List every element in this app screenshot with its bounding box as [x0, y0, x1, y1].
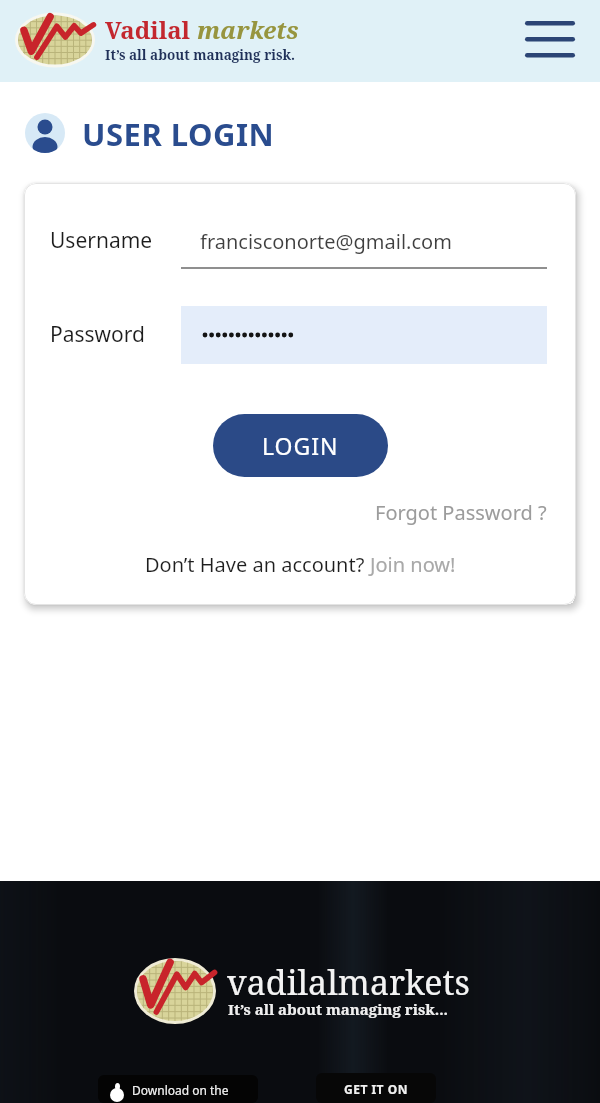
- staticText: markets: [197, 13, 299, 46]
- button[interactable]: Forgot Password ?: [375, 499, 547, 526]
- staticText: GET IT ON: [344, 1081, 408, 1097]
- button[interactable]: GET IT ON: [316, 1073, 436, 1103]
- staticText: Password: [50, 320, 145, 349]
- staticText: It’s all about managing risk...: [228, 999, 448, 1019]
- button[interactable]: LOGIN: [213, 414, 388, 477]
- staticText: francisconorte@gmail.com: [200, 228, 452, 255]
- button[interactable]: Join now!: [370, 551, 456, 578]
- staticText: LOGIN: [262, 430, 339, 461]
- button[interactable]: Download on the: [98, 1075, 258, 1103]
- staticText: Username: [50, 226, 153, 255]
- staticText: USER LOGIN: [82, 113, 275, 153]
- staticText: vadilalmarkets: [227, 959, 470, 1005]
- button[interactable]: [521, 14, 579, 64]
- staticText: Download on the: [132, 1082, 229, 1098]
- staticText: Vadilal: [105, 13, 197, 46]
- staticText: Don’t Have an account?: [145, 551, 370, 578]
- staticText: It’s all about managing risk.: [105, 46, 296, 64]
